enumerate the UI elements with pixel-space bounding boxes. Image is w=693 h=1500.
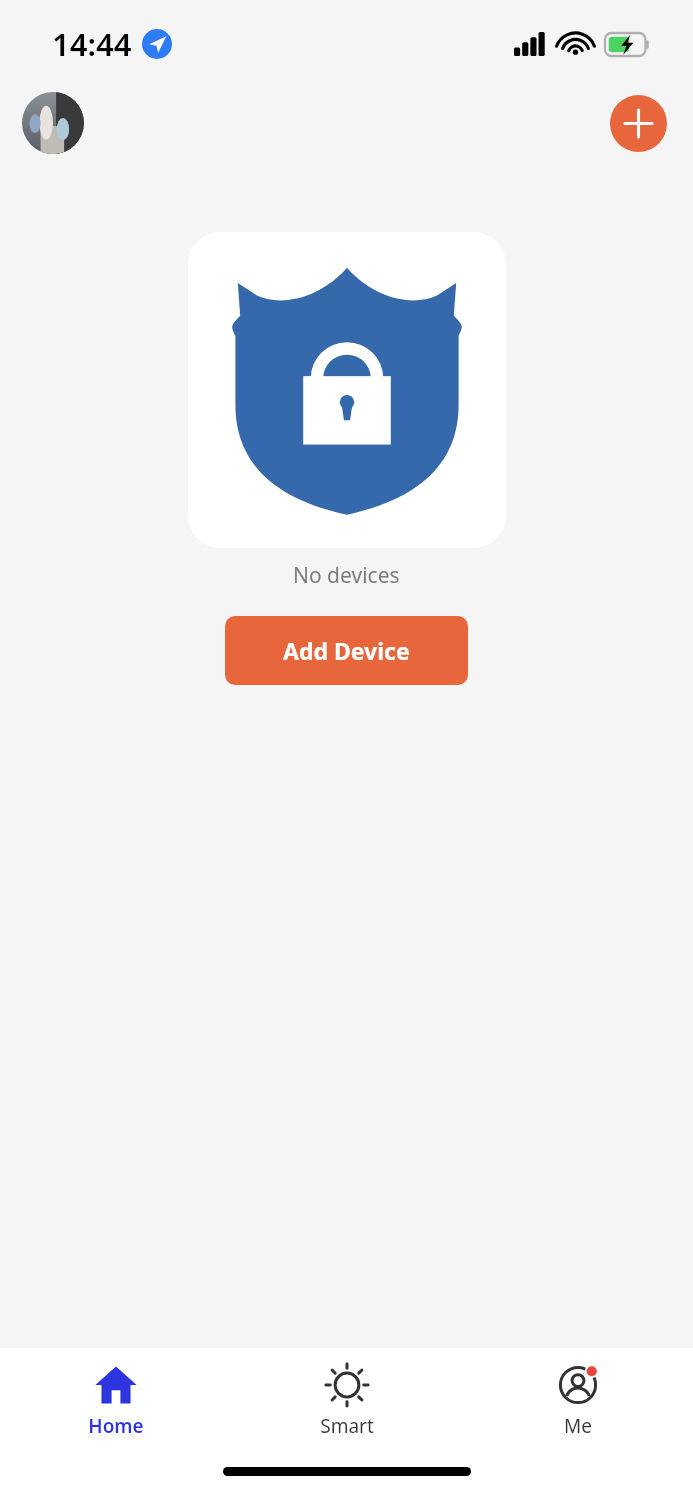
staticText: Add Device [283, 635, 410, 666]
staticText: 14:44 [52, 23, 132, 65]
staticText: Smart [320, 1413, 374, 1439]
staticText: Home [88, 1413, 144, 1439]
button[interactable]: Home [0, 1348, 231, 1454]
button[interactable]: Add [610, 95, 667, 152]
button[interactable]: Smart [231, 1348, 462, 1454]
staticText: Me [564, 1413, 592, 1439]
button[interactable]: Me [462, 1348, 693, 1454]
button[interactable]: Add Device [225, 616, 468, 685]
button[interactable]: Profile [22, 92, 84, 154]
staticText: No devices [293, 561, 400, 590]
